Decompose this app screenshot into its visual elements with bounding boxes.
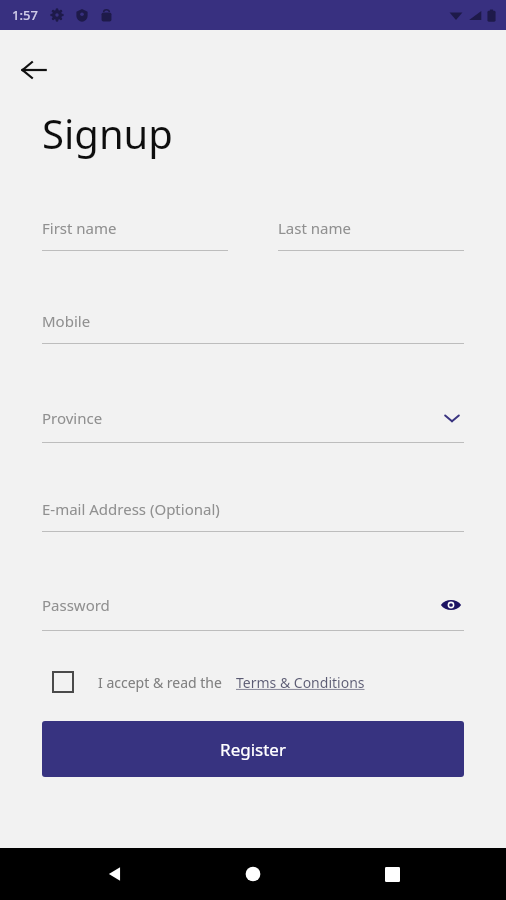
staticText: Terms & Conditions	[236, 673, 365, 692]
staticText: I accept & read the	[98, 673, 222, 692]
button[interactable]: Password	[42, 592, 464, 631]
staticText: E-mail Address (Optional)	[42, 499, 220, 519]
staticText: Register	[220, 738, 286, 761]
button[interactable]: Back	[91, 850, 139, 898]
button[interactable]: Province	[42, 406, 464, 443]
staticText: Last name	[278, 218, 351, 238]
staticText: Mobile	[42, 311, 91, 331]
button[interactable]: Show password	[438, 592, 464, 618]
button[interactable]: Back	[10, 46, 58, 94]
staticText: Password	[42, 595, 110, 615]
staticText: Signup	[42, 106, 173, 160]
button[interactable]: Accept terms checkbox	[52, 671, 464, 693]
button[interactable]: Home	[229, 850, 277, 898]
button[interactable]: Mobile	[42, 311, 464, 344]
button[interactable]: Last name	[278, 218, 464, 251]
staticText: First name	[42, 218, 117, 238]
staticText: Province	[42, 408, 103, 428]
button[interactable]: Terms & Conditions	[236, 673, 365, 692]
other: Open province list	[440, 406, 464, 430]
button[interactable]: E-mail Address (Optional)	[42, 499, 464, 532]
button[interactable]: First name	[42, 218, 228, 251]
button[interactable]: Recent apps	[368, 850, 416, 898]
button[interactable]: Register	[42, 721, 464, 777]
staticText: 1:57	[12, 6, 38, 24]
button[interactable]: Accept terms checkbox	[52, 671, 74, 693]
